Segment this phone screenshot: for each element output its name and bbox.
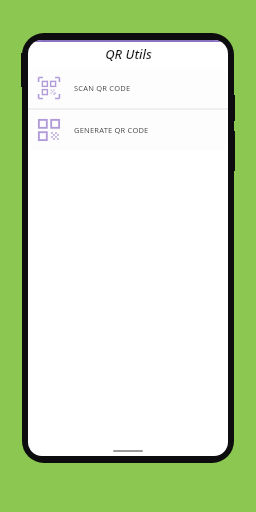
staticText: QR Utils <box>105 45 152 63</box>
staticText: SCAN QR CODE <box>74 83 131 93</box>
staticText: GENERATE QR CODE <box>74 125 149 135</box>
button[interactable]: SCAN QR CODE <box>30 68 226 108</box>
button[interactable]: GENERATE QR CODE <box>30 110 226 150</box>
